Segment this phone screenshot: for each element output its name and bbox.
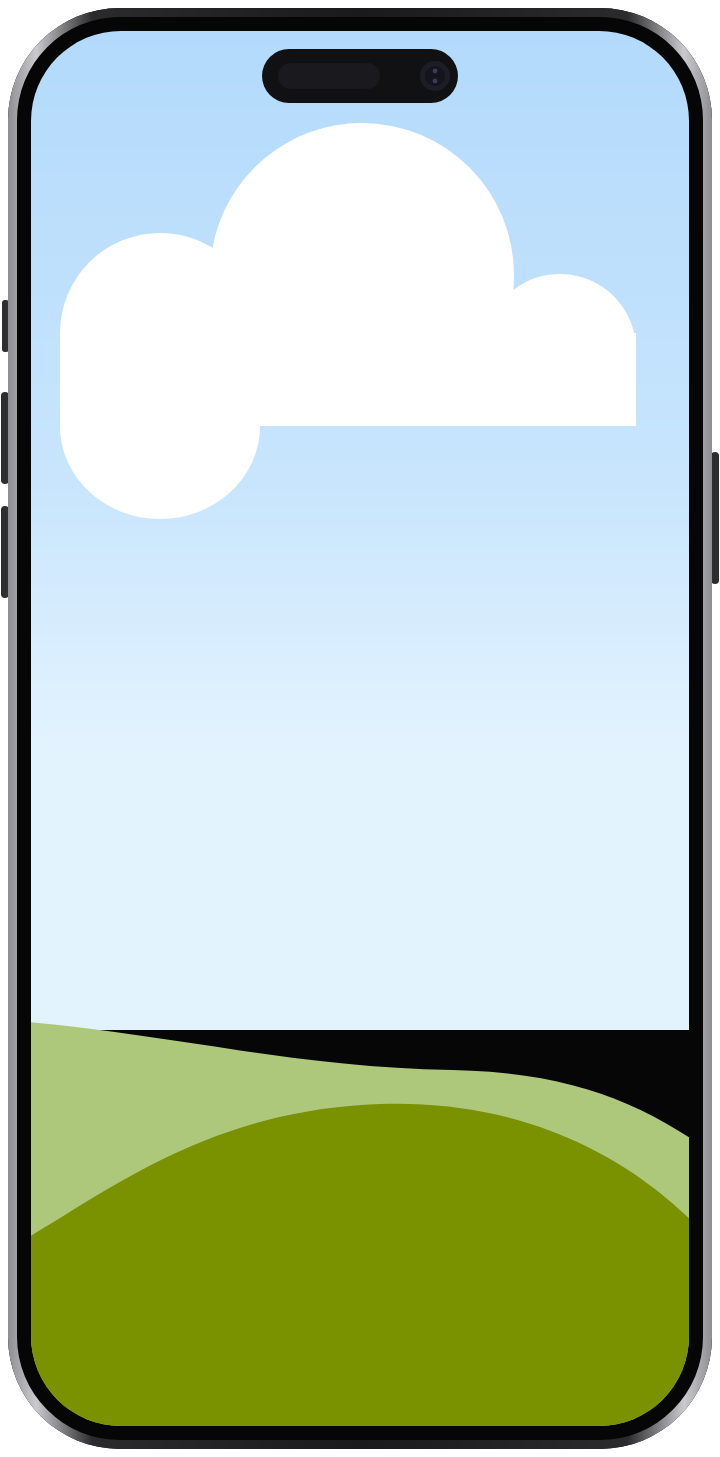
button[interactable]: Sunny landscape wallpaper [0,0,720,1457]
